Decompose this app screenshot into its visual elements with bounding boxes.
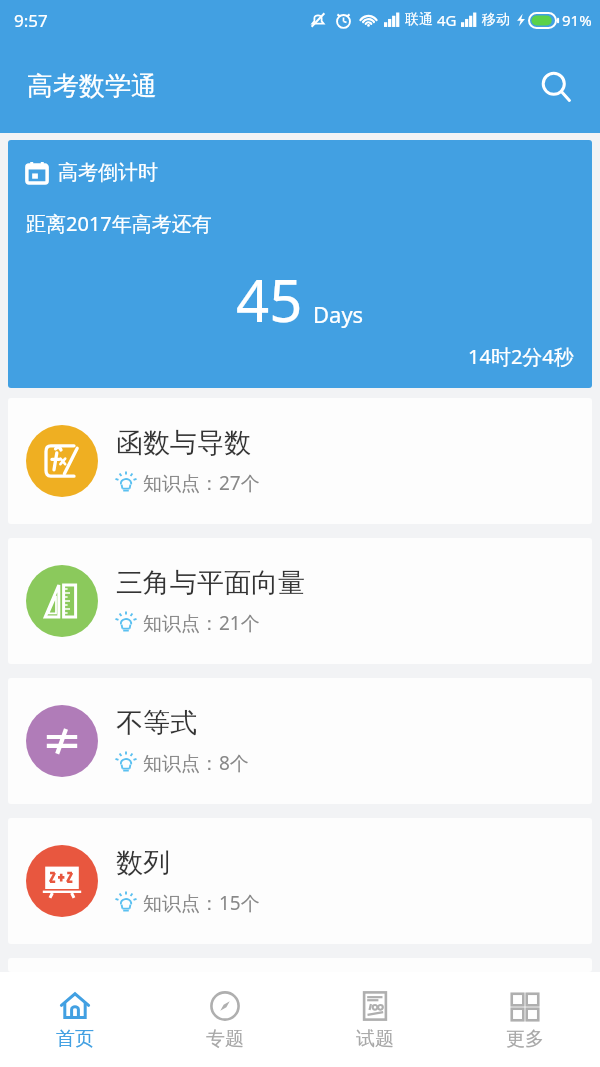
staticText: 专题 <box>206 1027 244 1051</box>
button[interactable]: 函数与导数 <box>8 398 592 524</box>
staticText: 高考数学通 <box>27 70 157 103</box>
staticText: 高考倒计时 <box>58 160 158 185</box>
button[interactable]: 更多 <box>450 972 600 1067</box>
staticText: 9:57 <box>14 9 48 32</box>
staticText: 三角与平面向量 <box>116 566 305 600</box>
staticText: 首页 <box>56 1027 94 1051</box>
button[interactable]: 专题 <box>150 972 300 1067</box>
staticText: 45 <box>236 260 303 339</box>
staticText: 知识点：8个 <box>143 750 249 776</box>
staticText: 数列 <box>116 846 170 880</box>
staticText: 联通 <box>405 11 433 29</box>
button[interactable]: 试题 <box>300 972 450 1067</box>
staticText: 试题 <box>356 1027 394 1051</box>
button[interactable]: 三角与平面向量 <box>8 538 592 664</box>
staticText: 不等式 <box>116 706 197 740</box>
staticText: 知识点：27个 <box>143 470 260 496</box>
button[interactable]: 首页 <box>0 972 150 1067</box>
staticText: 知识点：15个 <box>143 890 260 916</box>
staticText: 4G <box>437 10 457 30</box>
staticText: 91% <box>562 10 592 30</box>
button[interactable]: 不等式 <box>8 678 592 804</box>
staticText: 14时2分4秒 <box>468 343 574 370</box>
staticText: Days <box>313 299 364 329</box>
button[interactable]: 数列 <box>8 818 592 944</box>
staticText: 函数与导数 <box>116 426 251 460</box>
button[interactable]: 高考倒计时 <box>8 140 592 388</box>
staticText: 知识点：21个 <box>143 610 260 636</box>
staticText: 更多 <box>506 1027 544 1051</box>
staticText: 移动 <box>482 11 510 29</box>
staticText: 距离2017年高考还有 <box>26 210 212 237</box>
button[interactable]: Search <box>532 63 580 111</box>
